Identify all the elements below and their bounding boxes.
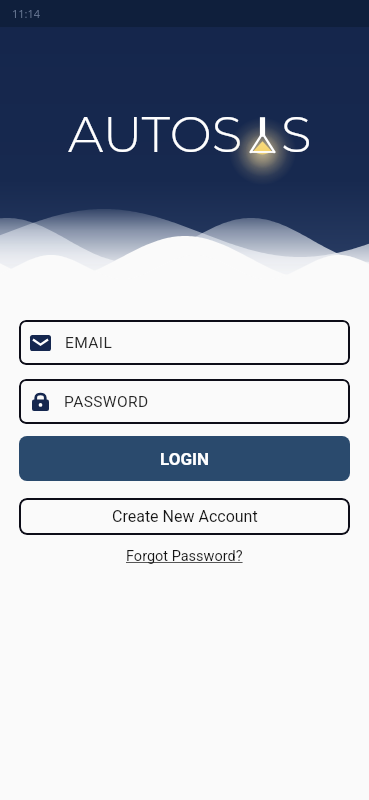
staticText: Create New Account — [112, 507, 258, 526]
staticText: S — [281, 104, 312, 165]
staticText: PASSWORD — [64, 393, 149, 411]
button[interactable]: EMAIL — [19, 320, 350, 365]
staticText: 11:14 — [12, 6, 41, 21]
staticText: AUTOS — [68, 104, 243, 165]
button[interactable]: Create New Account — [19, 498, 350, 535]
button[interactable]: PASSWORD — [19, 379, 350, 424]
staticText: LOGIN — [160, 449, 209, 469]
button[interactable]: LOGIN — [19, 436, 350, 481]
button[interactable]: Forgot Password? — [126, 548, 243, 565]
staticText: EMAIL — [65, 334, 113, 352]
